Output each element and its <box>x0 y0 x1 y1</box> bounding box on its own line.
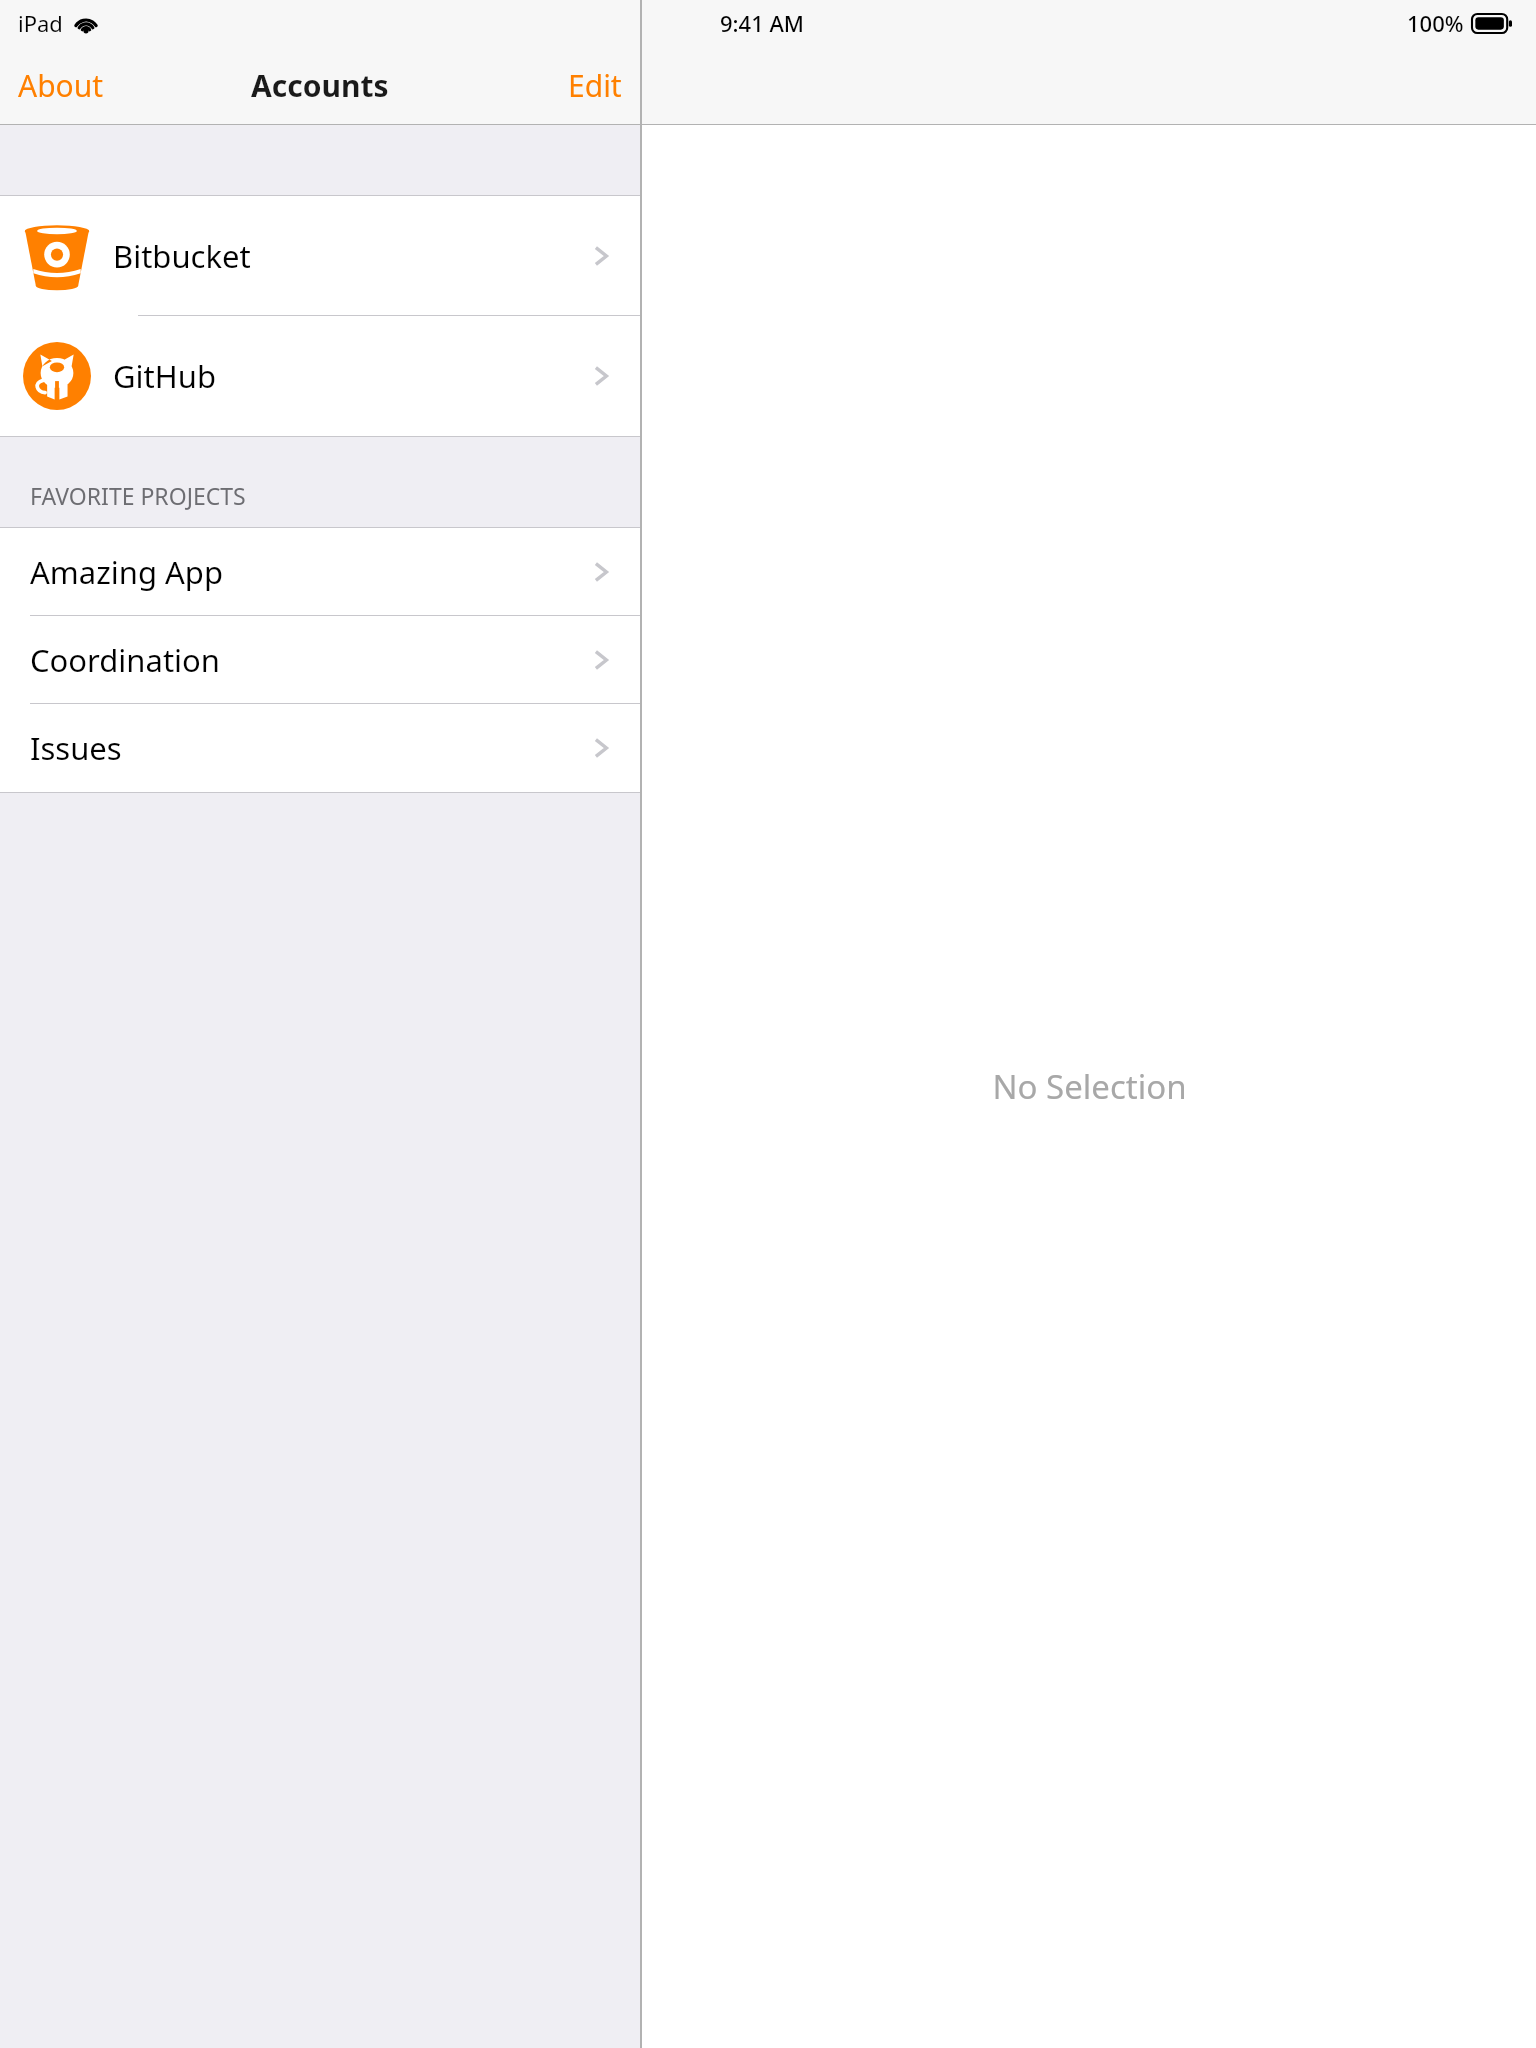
staticText: Accounts <box>251 65 389 106</box>
staticText: iPad <box>18 8 63 38</box>
staticText: Amazing App <box>30 551 223 593</box>
staticText: About <box>18 65 104 106</box>
staticText: FAVORITE PROJECTS <box>30 480 246 511</box>
staticText: Edit <box>568 65 622 106</box>
button[interactable]: About <box>8 57 114 114</box>
button[interactable]: Amazing App <box>0 528 640 616</box>
staticText: GitHub <box>113 355 216 397</box>
staticText: Issues <box>30 727 122 769</box>
staticText: Coordination <box>30 639 220 681</box>
staticText: 100% <box>1407 8 1464 38</box>
button[interactable]: Issues <box>0 704 640 792</box>
staticText: 9:41 AM <box>720 8 805 38</box>
button[interactable]: GitHub <box>0 316 640 436</box>
button[interactable]: Edit <box>558 57 632 114</box>
button[interactable]: Coordination <box>0 616 640 704</box>
staticText: No Selection <box>992 1064 1187 1109</box>
button[interactable]: Bitbucket <box>0 196 640 316</box>
staticText: Bitbucket <box>113 235 251 277</box>
